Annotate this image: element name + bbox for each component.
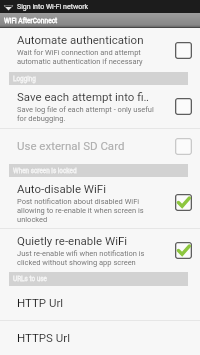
button[interactable]: Save each attempt into fi‥ [0,85,200,128]
button[interactable]: HTTPS Url [0,321,200,354]
button[interactable]: Automate authentication [0,28,200,72]
staticText: automatic authentication if necessary [17,57,143,66]
staticText: for debugging. [17,114,66,123]
button[interactable]: Use external SD Card [0,129,200,164]
staticText: Post notification about disabled WiFi [17,197,140,206]
staticText: Logging [13,75,36,83]
staticText: unlocked [17,215,48,224]
staticText: Save each attempt into fi‥ [17,90,150,103]
staticText: clicked without showing app screen [17,258,136,267]
staticText: Wait for WiFi connection and attempt [17,48,141,57]
staticText: Just re-enable wifi when notification is [17,249,145,258]
staticText: HTTPS Url [17,331,70,344]
button[interactable]: Save each attempt into fi‥ [167,85,200,128]
staticText: URLs to use [13,275,47,283]
button[interactable]: Automate authentication [167,28,200,72]
button[interactable]: HTTP Url [0,286,200,320]
button[interactable]: Quietly re-enable WiFi [167,229,200,272]
staticText: HTTP Url [17,296,64,309]
button[interactable]: Quietly re-enable WiFi [0,229,200,272]
staticText: Save log file of each attempt - only use… [17,105,154,114]
staticText: allowing to re-enable it when screen is [17,206,144,215]
staticText: Use external SD Card [17,139,125,152]
button[interactable]: Use external SD Card [167,129,200,164]
button[interactable]: Auto-disable WiFi [167,177,200,228]
staticText: When screen is locked [13,167,77,175]
staticText: Quietly re-enable WiFi [17,234,128,247]
staticText: Auto-disable WiFi [17,182,106,195]
staticText: Automate authentication [17,33,144,46]
staticText: WiFi AfterConnect [4,17,58,25]
staticText: Sign into Wi-Fi network [17,3,89,11]
button[interactable]: Auto-disable WiFi [0,177,200,228]
